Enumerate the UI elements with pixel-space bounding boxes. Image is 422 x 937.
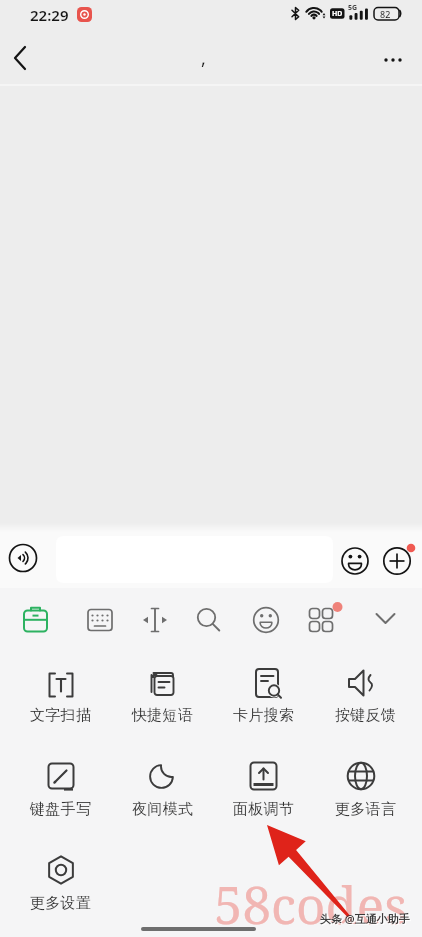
staticText: 22:29 [30,5,69,25]
staticText: HD [332,9,343,19]
button[interactable]: 键盘手写 [13,744,109,824]
staticText: , [201,46,206,71]
staticText: 更多语言 [335,800,397,819]
button[interactable] [376,46,410,74]
button[interactable]: 卡片搜索 [216,652,312,730]
staticText: 5G [348,3,358,13]
staticText: 卡片搜索 [233,706,295,725]
staticText: 按键反馈 [335,706,397,725]
button[interactable] [338,544,372,578]
button[interactable] [80,600,120,642]
button[interactable]: 夜间模式 [115,744,211,824]
staticText: 58codes [214,869,408,937]
staticText: 头条 @互通小助手 [321,912,411,927]
button[interactable] [301,600,345,642]
button[interactable] [6,541,41,576]
button[interactable] [4,40,40,76]
staticText: 更多设置 [30,894,92,913]
staticText: 键盘手写 [30,800,92,819]
button[interactable]: 面板调节 [216,744,312,824]
button[interactable]: 按键反馈 [318,652,414,730]
button[interactable] [380,544,414,578]
staticText: 夜间模式 [132,800,194,819]
button[interactable]: 更多语言 [318,744,414,824]
button[interactable]: 更多设置 [13,838,109,918]
button[interactable] [188,600,228,642]
staticText: 82 [380,8,391,20]
staticText: 头条 @互通小助手 [320,911,410,926]
button[interactable] [367,600,403,642]
button[interactable] [135,600,175,642]
button[interactable]: 快捷短语 [115,652,211,730]
button[interactable] [16,600,56,642]
staticText: 快捷短语 [132,706,194,725]
staticText: 文字扫描 [30,706,92,725]
staticText: 面板调节 [233,800,295,819]
button[interactable]: 文字扫描 [13,652,109,730]
button[interactable] [246,600,286,642]
